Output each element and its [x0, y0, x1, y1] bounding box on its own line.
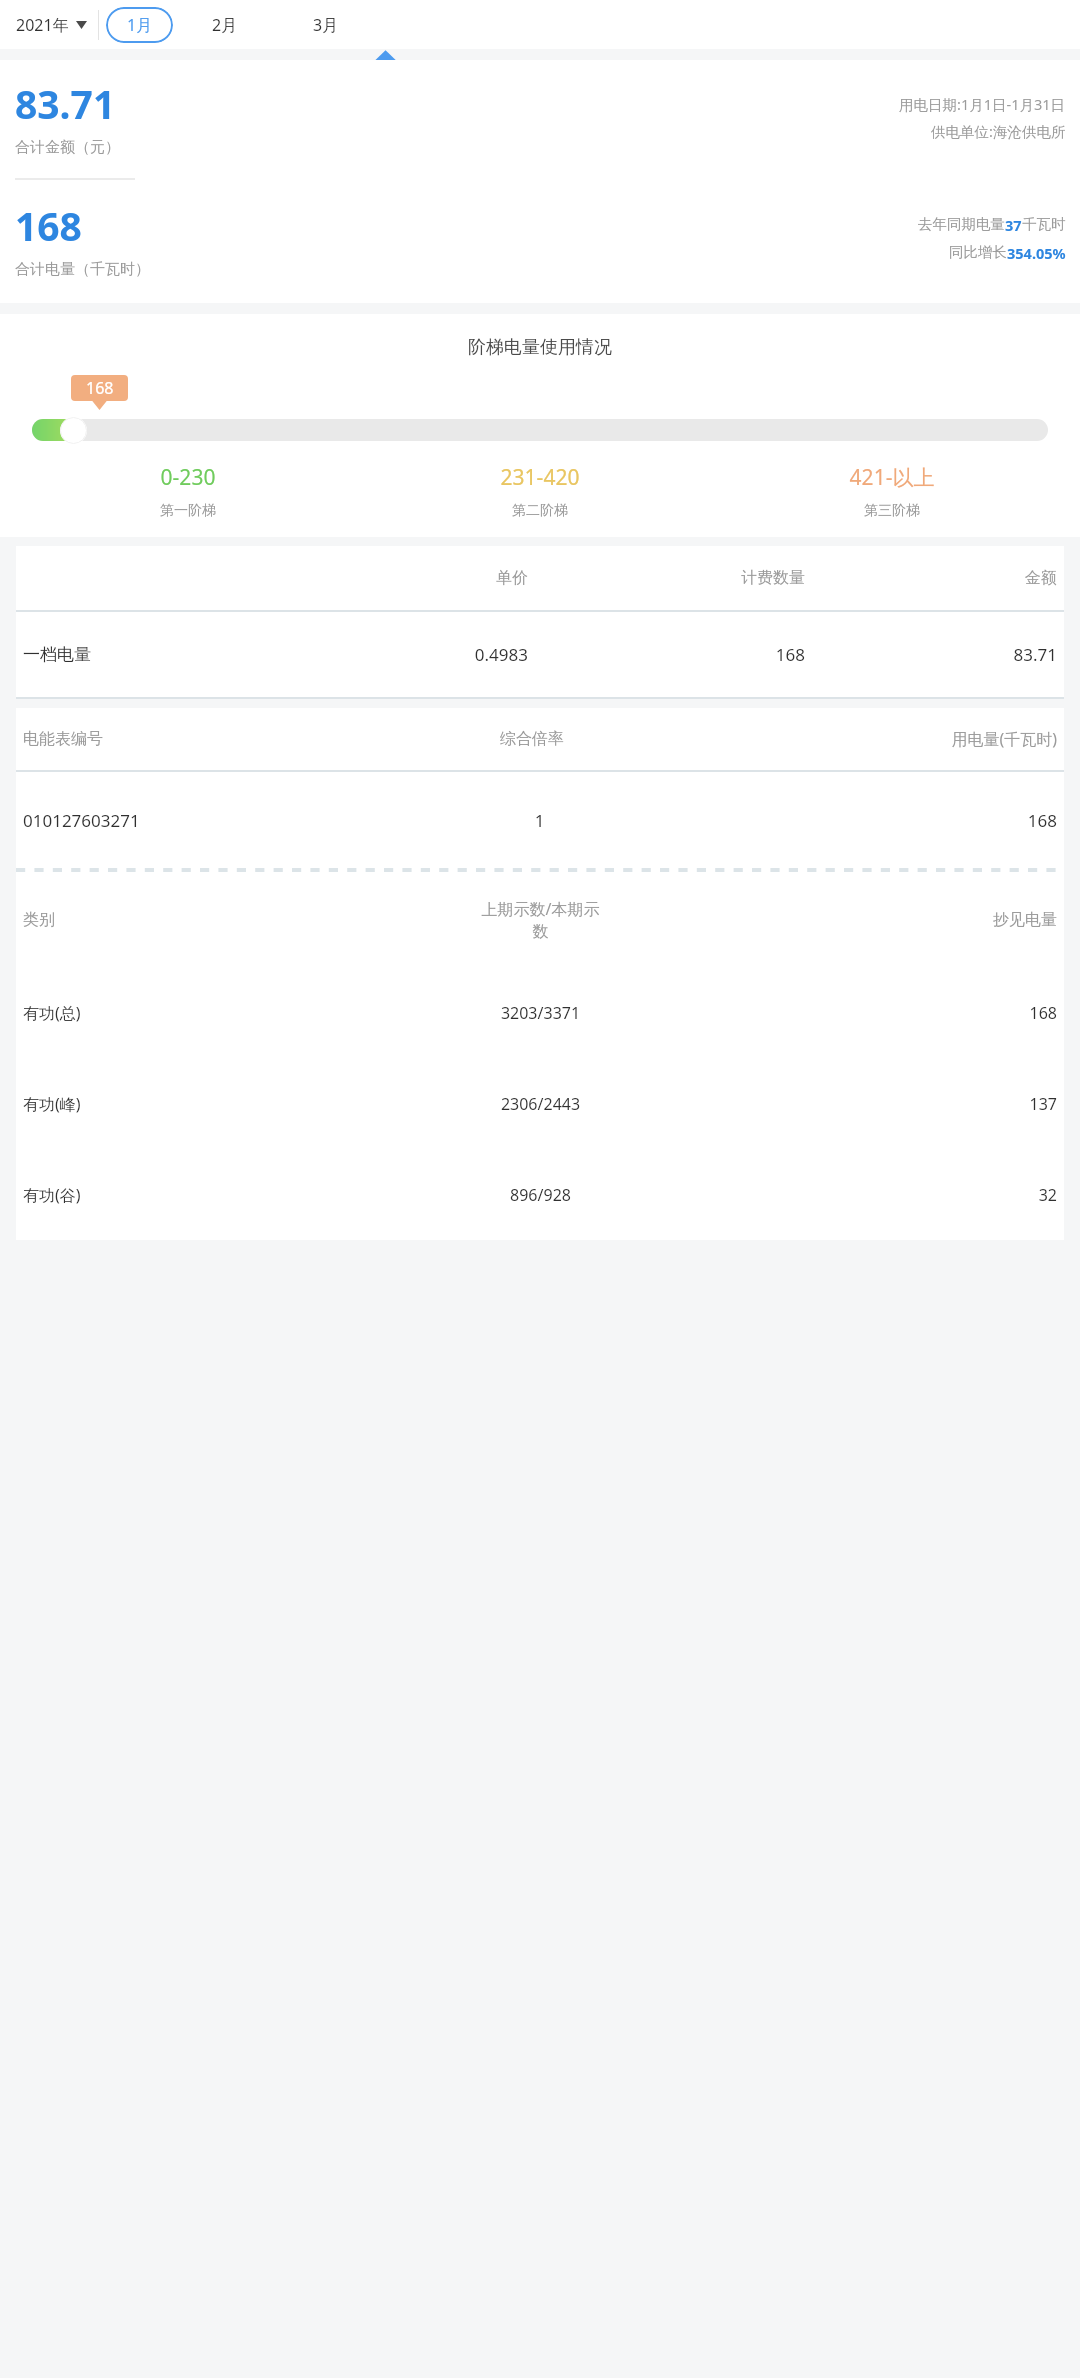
staticText: 合计电量（千瓦时） — [15, 260, 150, 279]
staticText: 896/928 — [319, 1184, 762, 1206]
staticText: 有功(谷) — [23, 1184, 319, 1206]
staticText: 231-420 — [364, 463, 716, 492]
staticText: 168 — [86, 377, 114, 399]
staticText: 3月 — [313, 14, 339, 36]
staticText: 1 — [356, 809, 723, 832]
button[interactable]: 2021年 — [14, 8, 89, 42]
staticText: 类别 — [23, 910, 319, 930]
staticText: 3203/3371 — [319, 1002, 762, 1024]
staticText: 2306/2443 — [319, 1093, 762, 1115]
button[interactable]: 一档电量 — [16, 612, 1064, 697]
staticText: 有功(峰) — [23, 1093, 319, 1115]
staticText: 用电量(千瓦时) — [682, 728, 1057, 750]
staticText: 金额 — [805, 568, 1057, 588]
staticText: 综合倍率 — [382, 729, 682, 749]
staticText: 供电单位:海沧供电所 — [931, 121, 1066, 141]
staticText: 137 — [762, 1093, 1057, 1115]
button[interactable]: 2月 — [173, 1, 276, 49]
staticText: 合计金额（元） — [15, 138, 120, 157]
staticText: 计费数量 — [528, 568, 805, 588]
staticText: 第三阶梯 — [716, 502, 1068, 520]
staticText: 2月 — [212, 14, 238, 36]
staticText: 37 — [1005, 215, 1022, 235]
button[interactable]: 有功(总) — [16, 967, 1064, 1058]
staticText: 83.71 — [15, 77, 116, 130]
staticText: 上期示数/本期示数 — [477, 898, 604, 942]
staticText: 168 — [762, 1002, 1057, 1024]
button[interactable]: 有功(谷) — [16, 1149, 1064, 1240]
staticText: 1月 — [127, 14, 153, 36]
staticText: 阶梯电量使用情况 — [468, 336, 612, 359]
staticText: 32 — [762, 1184, 1057, 1206]
staticText: 0.4983 — [288, 643, 528, 666]
staticText: 0-230 — [12, 463, 364, 492]
button[interactable]: 1月 — [106, 7, 173, 43]
staticText: 168 — [723, 809, 1057, 832]
staticText: 354.05% — [1007, 243, 1066, 263]
staticText: 2021年 — [16, 14, 69, 36]
staticText: 电能表编号 — [23, 729, 382, 749]
staticText: 168 — [528, 643, 805, 666]
staticText: 一档电量 — [23, 644, 288, 665]
staticText: 第二阶梯 — [364, 502, 716, 520]
staticText: 用电日期:1月1日-1月31日 — [899, 94, 1066, 114]
staticText: 168 — [15, 199, 82, 252]
button[interactable]: 有功(峰) — [16, 1058, 1064, 1149]
staticText: 有功(总) — [23, 1002, 319, 1024]
staticText: 抄见电量 — [762, 910, 1057, 930]
staticText: 421-以上 — [716, 463, 1068, 492]
staticText: 单价 — [288, 568, 528, 588]
staticText: 去年同期电量 — [918, 215, 1005, 233]
button[interactable]: 用电量滑块 168 — [60, 417, 87, 444]
staticText: 83.71 — [805, 643, 1057, 666]
staticText: 第一阶梯 — [12, 502, 364, 520]
button[interactable]: 010127603271 — [16, 772, 1064, 868]
staticText: 010127603271 — [23, 809, 140, 832]
staticText: 同比增长 — [949, 243, 1007, 261]
button[interactable]: 3月 — [276, 1, 376, 49]
staticText: 千瓦时 — [1022, 215, 1066, 233]
